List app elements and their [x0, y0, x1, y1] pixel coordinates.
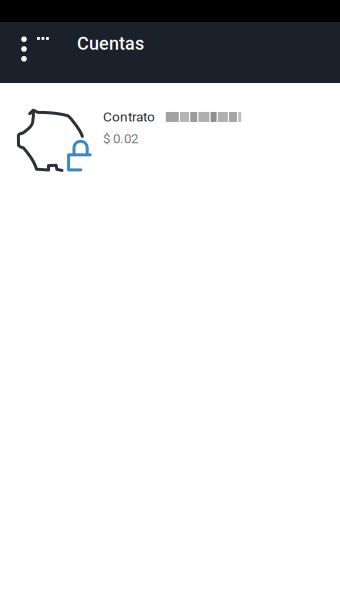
button[interactable]: Contrato [0, 83, 340, 183]
staticText: Cuentas [77, 33, 144, 54]
staticText: Contrato [103, 109, 155, 125]
staticText: $ 0.02 [103, 131, 138, 146]
button[interactable]: More options [0, 22, 36, 62]
